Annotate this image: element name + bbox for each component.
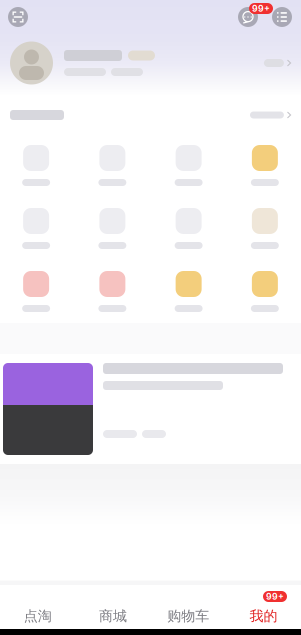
button[interactable]: More options bbox=[272, 7, 292, 27]
staticText: 点淘 bbox=[24, 607, 52, 625]
button[interactable]: See all bbox=[250, 105, 291, 124]
button[interactable]: 商城 bbox=[75, 585, 150, 629]
button[interactable]: Shortcut bbox=[227, 197, 301, 260]
staticText: 99+ bbox=[252, 3, 270, 14]
button[interactable]: Shortcut bbox=[227, 134, 301, 197]
button[interactable]: Shortcut bbox=[74, 197, 150, 260]
staticText: 商城 bbox=[99, 607, 127, 625]
staticText: 购物车 bbox=[167, 607, 209, 625]
button[interactable]: Settings bbox=[264, 49, 301, 77]
button[interactable]: Messages bbox=[238, 7, 258, 27]
button[interactable]: Shortcut bbox=[150, 260, 227, 323]
button[interactable]: Shortcut bbox=[227, 260, 301, 323]
button[interactable]: Shortcut bbox=[150, 134, 227, 197]
button[interactable]: Recommended item bbox=[0, 354, 301, 464]
button[interactable]: 我的 bbox=[226, 585, 301, 629]
button[interactable]: Shortcut bbox=[0, 134, 74, 197]
button[interactable]: Shortcut bbox=[0, 260, 74, 323]
button[interactable]: Shortcut bbox=[74, 134, 150, 197]
button[interactable]: Scan bbox=[0, 0, 28, 34]
button[interactable]: 购物车 bbox=[150, 585, 226, 629]
staticText: 我的 bbox=[249, 607, 277, 625]
button[interactable]: 点淘 bbox=[0, 585, 75, 629]
button[interactable]: Profile photo bbox=[10, 41, 53, 84]
button[interactable]: Shortcut bbox=[0, 197, 74, 260]
button[interactable]: Shortcut bbox=[150, 197, 227, 260]
button[interactable]: Shortcut bbox=[74, 260, 150, 323]
staticText: 99+ bbox=[266, 591, 284, 602]
